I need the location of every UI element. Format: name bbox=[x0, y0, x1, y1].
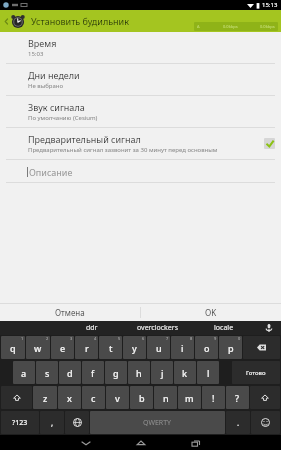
button[interactable]: o bbox=[195, 336, 218, 359]
staticText: Описание bbox=[29, 166, 73, 178]
staticText: 15:03 bbox=[28, 50, 44, 58]
button[interactable]: x bbox=[58, 386, 81, 409]
staticText: 9 bbox=[214, 336, 217, 341]
button[interactable]: r bbox=[75, 336, 98, 359]
staticText: Установить будильник bbox=[31, 15, 129, 27]
button[interactable]: t bbox=[99, 336, 122, 359]
staticText: p bbox=[228, 342, 234, 354]
staticText: c bbox=[91, 392, 96, 404]
button[interactable]: y bbox=[123, 336, 146, 359]
button[interactable]: QWERTY bbox=[90, 411, 225, 434]
button[interactable]: ? bbox=[226, 386, 249, 409]
button[interactable]: ?123 bbox=[1, 411, 39, 434]
button[interactable]: Описание bbox=[0, 160, 281, 183]
button[interactable]: overclockers bbox=[125, 321, 191, 335]
staticText: i bbox=[181, 342, 184, 354]
button[interactable]: z bbox=[33, 386, 57, 409]
button[interactable]: Отмена bbox=[0, 304, 140, 321]
button[interactable]: Сменить язык bbox=[65, 411, 89, 434]
button[interactable]: m bbox=[178, 386, 201, 409]
staticText: q bbox=[10, 342, 16, 354]
staticText: 0.0kbps bbox=[260, 24, 275, 29]
button[interactable]: f bbox=[82, 361, 104, 384]
staticText: x bbox=[67, 392, 72, 404]
staticText: d bbox=[67, 367, 73, 379]
staticText: locale bbox=[214, 323, 234, 333]
button[interactable]: k bbox=[174, 361, 196, 384]
button[interactable]: a bbox=[13, 361, 35, 384]
staticText: OK bbox=[205, 307, 217, 318]
button[interactable]: , bbox=[40, 411, 64, 434]
staticText: k bbox=[182, 367, 188, 379]
staticText: s bbox=[45, 367, 50, 379]
button[interactable]: Голосовой ввод bbox=[257, 321, 281, 335]
button[interactable]: Главный экран bbox=[113, 435, 168, 450]
button[interactable]: p bbox=[219, 336, 242, 359]
button[interactable]: n bbox=[154, 386, 177, 409]
staticText: Не выбрано bbox=[28, 82, 64, 90]
button[interactable]: q bbox=[1, 336, 25, 359]
staticText: z bbox=[43, 392, 48, 404]
staticText: f bbox=[91, 367, 95, 379]
button[interactable]: Реклама bbox=[194, 22, 278, 31]
button[interactable]: ddr bbox=[59, 321, 125, 335]
staticText: 2 bbox=[46, 336, 49, 341]
button[interactable]: OK bbox=[141, 304, 281, 321]
staticText: ddr bbox=[86, 323, 98, 333]
staticText: 8 bbox=[190, 336, 193, 341]
staticText: t bbox=[109, 342, 113, 354]
button[interactable]: ! bbox=[202, 386, 225, 409]
button[interactable]: . bbox=[226, 411, 250, 434]
button[interactable]: g bbox=[105, 361, 127, 384]
button[interactable]: i bbox=[171, 336, 194, 359]
button[interactable]: c bbox=[82, 386, 105, 409]
button[interactable]: s bbox=[36, 361, 58, 384]
button[interactable]: Дни недели bbox=[0, 64, 281, 96]
button[interactable]: Предварительный сигнал bbox=[0, 128, 281, 160]
staticText: w bbox=[34, 342, 42, 354]
button[interactable]: Назад bbox=[58, 435, 113, 450]
staticText: A bbox=[197, 24, 200, 29]
button[interactable]: Время bbox=[0, 32, 281, 64]
button[interactable]: Готово bbox=[232, 361, 280, 384]
staticText: v bbox=[115, 392, 120, 404]
staticText: m bbox=[185, 392, 194, 404]
staticText: Готово bbox=[246, 369, 266, 377]
button[interactable]: e bbox=[51, 336, 74, 359]
staticText: , bbox=[51, 417, 54, 428]
staticText: 7 bbox=[166, 336, 169, 341]
staticText: 6 bbox=[142, 336, 145, 341]
button[interactable]: h bbox=[128, 361, 150, 384]
button[interactable]: v bbox=[106, 386, 129, 409]
staticText: a bbox=[21, 367, 27, 379]
button[interactable]: d bbox=[59, 361, 81, 384]
button[interactable]: l bbox=[197, 361, 219, 384]
button[interactable]: Включить предварительный сигнал bbox=[264, 138, 275, 149]
staticText: Предварительный сигнал bbox=[28, 133, 141, 145]
staticText: Звук сигнала bbox=[28, 101, 85, 113]
staticText: Дни недели bbox=[28, 69, 80, 81]
button[interactable]: u bbox=[147, 336, 170, 359]
staticText: 4 bbox=[94, 336, 97, 341]
button[interactable]: Эмодзи bbox=[251, 411, 280, 434]
staticText: overclockers bbox=[137, 323, 179, 333]
staticText: g bbox=[113, 367, 119, 379]
button[interactable]: b bbox=[130, 386, 153, 409]
button[interactable]: Обзор bbox=[168, 435, 223, 450]
staticText: ? bbox=[235, 392, 240, 404]
staticText: l bbox=[207, 367, 210, 379]
staticText: u bbox=[156, 342, 162, 354]
staticText: 15:13 bbox=[262, 1, 278, 9]
button[interactable]: Shift bbox=[250, 386, 280, 409]
button[interactable]: j bbox=[151, 361, 173, 384]
button[interactable]: Shift bbox=[1, 386, 32, 409]
button[interactable]: Звук сигнала bbox=[0, 96, 281, 128]
button[interactable]: locale bbox=[191, 321, 257, 335]
button[interactable]: w bbox=[26, 336, 50, 359]
staticText: Время bbox=[28, 37, 57, 49]
staticText: ?123 bbox=[12, 418, 28, 428]
staticText: j bbox=[161, 367, 164, 379]
button[interactable]: Назад bbox=[2, 10, 10, 32]
button[interactable]: Удалить bbox=[243, 336, 280, 359]
staticText: y bbox=[132, 342, 137, 354]
